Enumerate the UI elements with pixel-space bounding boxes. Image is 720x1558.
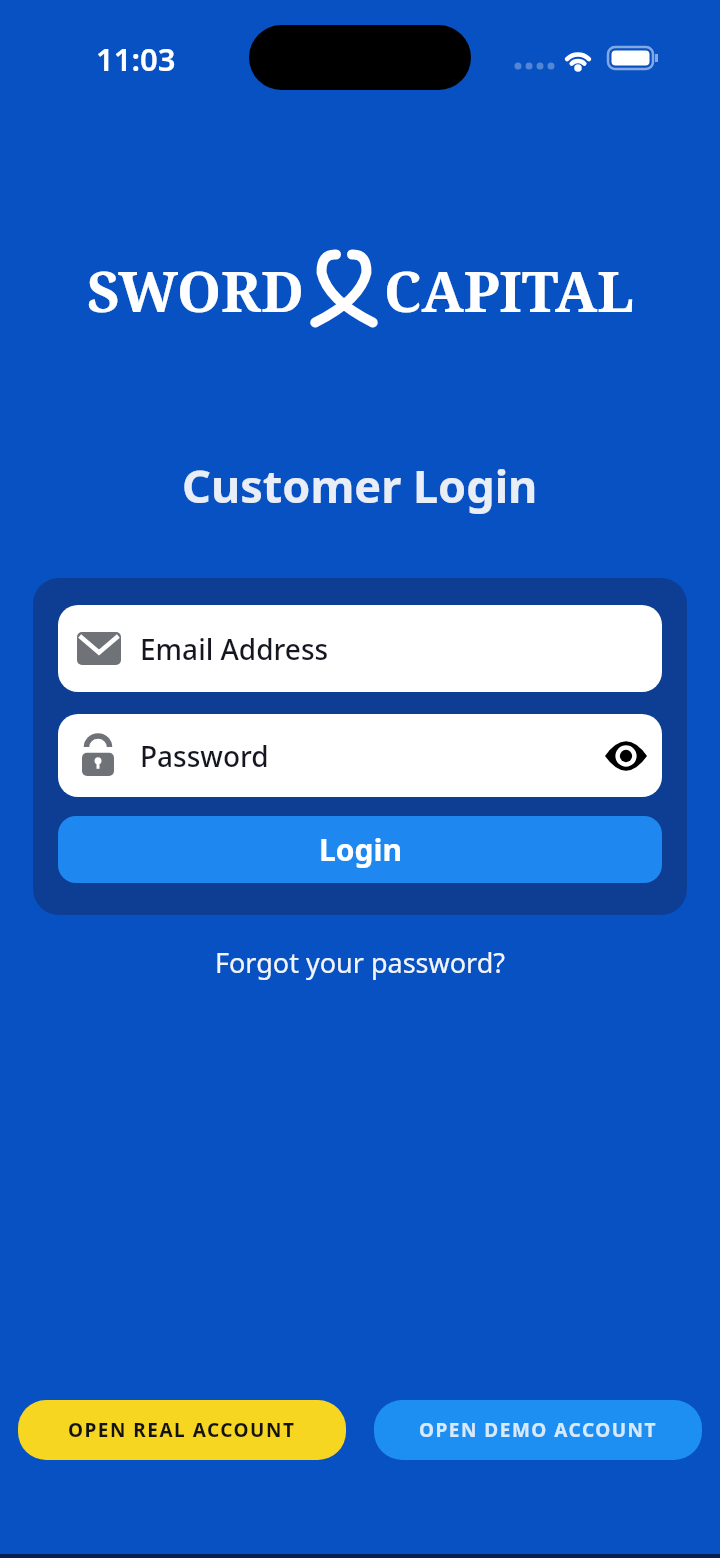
button[interactable]: OPEN DEMO ACCOUNT: [374, 1400, 702, 1460]
staticText: Customer Login: [182, 455, 538, 516]
staticText: SWORD: [87, 252, 304, 328]
staticText: Login: [319, 829, 402, 870]
staticText: OPEN REAL ACCOUNT: [68, 1417, 296, 1443]
staticText: CAPITAL: [384, 252, 634, 328]
staticText: Password: [140, 737, 269, 775]
staticText: Email Address: [140, 630, 329, 668]
staticText: 11:03: [96, 38, 176, 80]
button[interactable]: [605, 742, 647, 770]
staticText: OPEN DEMO ACCOUNT: [419, 1417, 657, 1443]
button[interactable]: Login: [58, 816, 662, 883]
button[interactable]: Password: [58, 714, 662, 797]
button[interactable]: Forgot your password?: [215, 944, 506, 981]
button[interactable]: OPEN REAL ACCOUNT: [18, 1400, 346, 1460]
button[interactable]: Email Address: [58, 605, 662, 692]
